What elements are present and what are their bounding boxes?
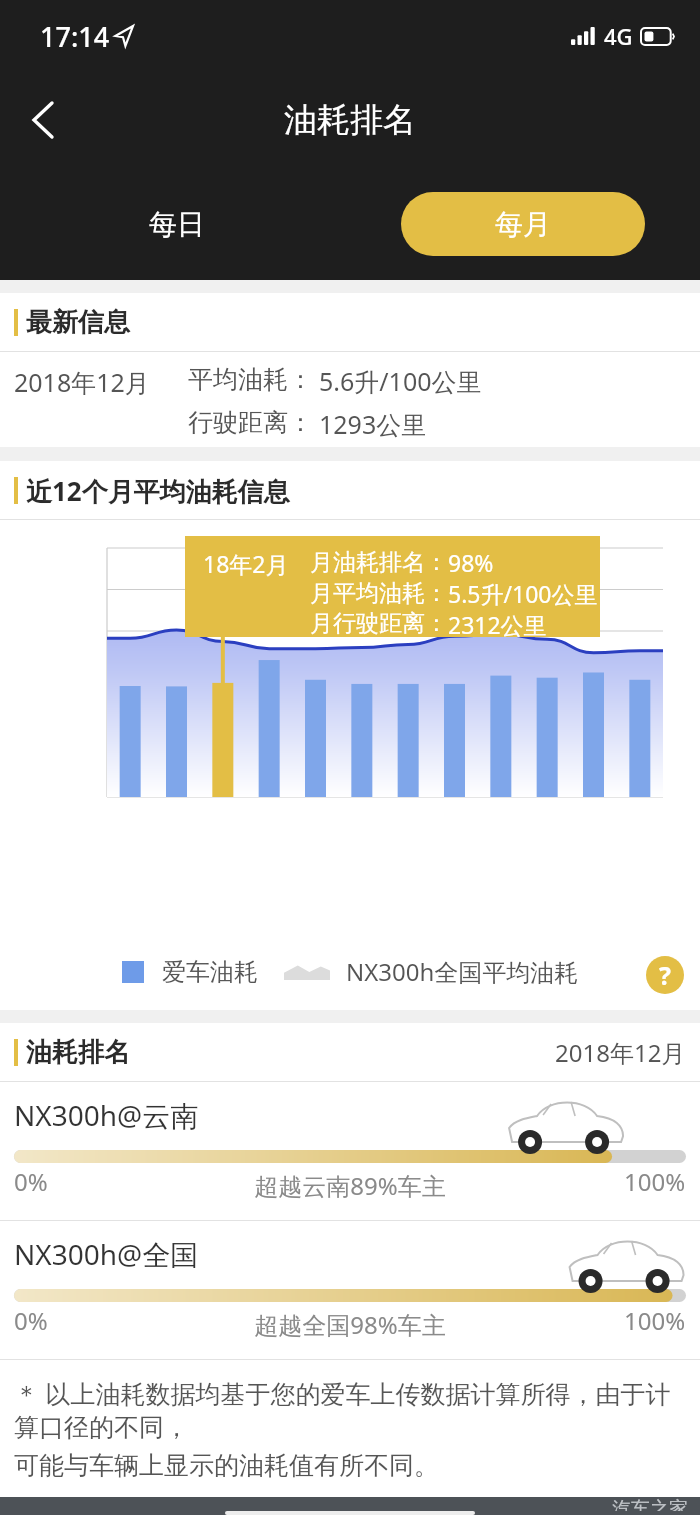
staticText: 每日 [149,207,205,242]
staticText: 5.5升/100公里 [448,578,598,609]
staticText: 98% [448,547,494,578]
staticText: 18年2月 [203,548,289,579]
button[interactable]: NX300h@云南 [0,1082,700,1220]
staticText: 月平均油耗： [310,579,448,608]
staticText: ＊ 以上油耗数据均基于您的爱车上传数据计算所得，由于计算口径的不同， [14,1376,686,1444]
staticText: 爱车油耗 [162,957,258,987]
staticText: 最新信息 [26,306,130,339]
staticText: 0% [14,1165,48,1198]
staticText: 2312公里 [448,609,547,637]
staticText: 2018年12月 [555,1036,686,1069]
staticText: 5.6升/100公里 [319,364,482,398]
button[interactable]: Help [646,956,684,994]
staticText: NX300h@全国 [14,1235,199,1273]
staticText: 每月 [495,207,551,242]
staticText: 近12个月平均油耗信息 [26,473,290,509]
staticText: 油耗排名 [284,99,416,141]
staticText: 行驶距离： [188,407,313,438]
staticText: 月油耗排名： [310,548,448,577]
staticText: 1293公里 [319,407,427,441]
button[interactable]: 每日 [55,192,299,256]
staticText: 月行驶距离： [310,609,448,637]
staticText: 平均油耗： [188,364,313,395]
staticText: 17:14 [40,18,110,55]
button[interactable]: Back [0,72,86,167]
staticText: 可能与车辆上显示的油耗值有所不同。 [14,1450,439,1481]
button[interactable]: 每月 [401,192,645,256]
staticText: 2018年12月 [14,365,150,399]
staticText: 0% [14,1304,48,1337]
staticText: 4G [604,21,633,51]
staticText: ? [659,958,671,992]
staticText: 超越云南89%车主 [254,1169,446,1202]
button[interactable]: NX300h@全国 [0,1221,700,1359]
staticText: 100% [624,1304,686,1337]
staticText: 油耗排名 [26,1036,130,1069]
staticText: NX300h@云南 [14,1096,199,1134]
staticText: 超越全国98%车主 [254,1308,446,1341]
staticText: NX300h全国平均油耗 [346,955,579,988]
staticText: 汽车之家 [612,1497,688,1511]
staticText: 100% [624,1165,686,1198]
